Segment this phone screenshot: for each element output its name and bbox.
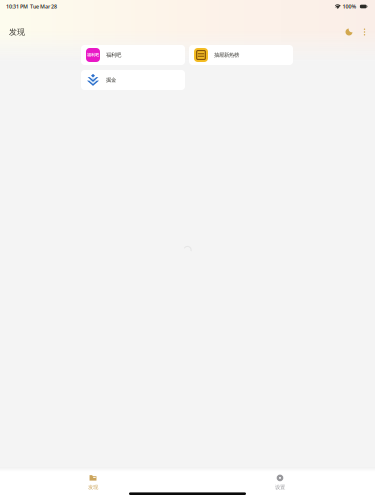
staticText: 发现 [88,484,98,490]
staticText: 福利吧 [106,52,121,58]
button[interactable]: 福利吧 [81,45,185,65]
button[interactable]: More options [358,22,371,41]
staticText: 抽屉新热榜 [214,52,239,58]
staticText: 10:31 PM [6,3,28,10]
button[interactable]: 掘金 [81,70,185,90]
button[interactable]: Toggle dark mode [340,22,358,41]
staticText: Tue Mar 28 [28,3,57,10]
staticText: 发现 [9,27,25,37]
button[interactable]: 发现 [43,472,143,492]
staticText: 福利吧 [87,52,99,57]
staticText: 设置 [275,484,285,490]
button[interactable]: 抽屉新热榜 [189,45,293,65]
staticText: 100% [341,3,356,10]
staticText: 掘金 [106,77,116,83]
button[interactable]: 设置 [230,472,330,492]
